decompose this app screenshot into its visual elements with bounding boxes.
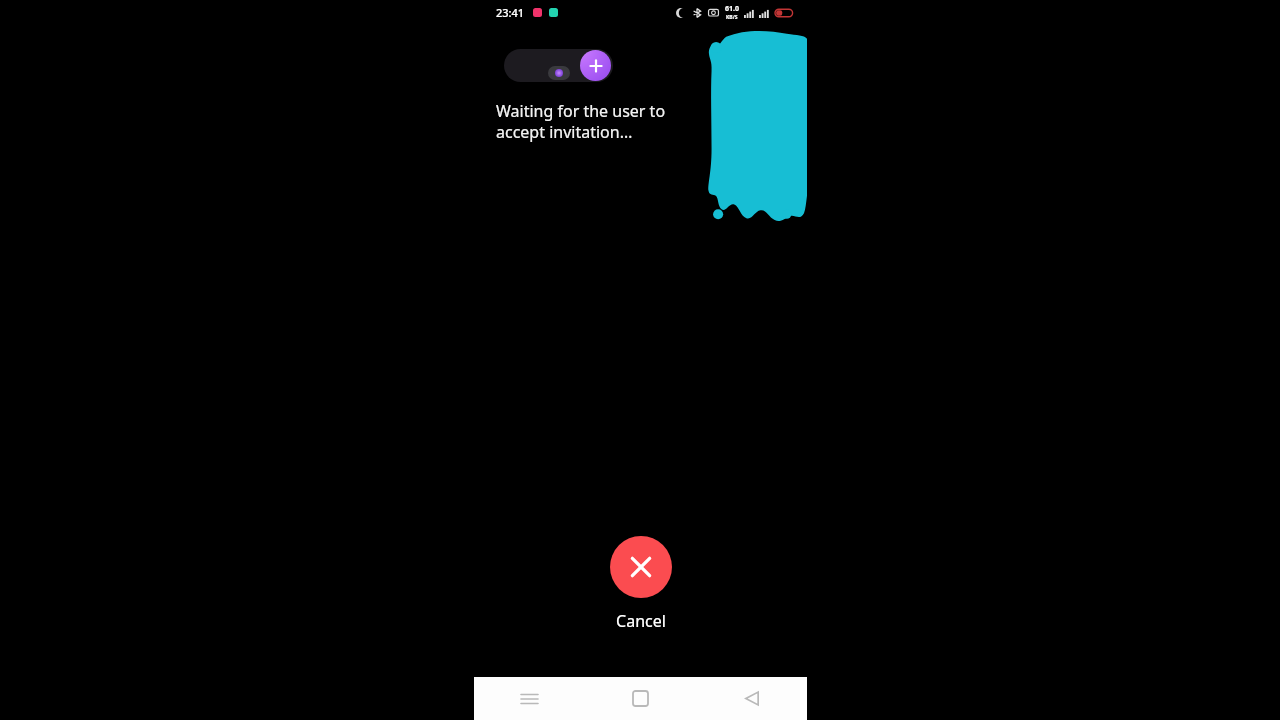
button[interactable]: Home (585, 677, 696, 720)
staticText: Waiting for the user to accept invitatio… (496, 100, 686, 143)
button[interactable]: Add participant (504, 49, 613, 82)
staticText: Cancel (616, 610, 666, 632)
button[interactable]: Cancel call (610, 536, 672, 598)
staticText: 61.0 (725, 4, 739, 14)
staticText: 23:41 (496, 5, 525, 20)
button[interactable]: Recent apps (474, 677, 585, 720)
button[interactable]: Add participant (580, 50, 611, 81)
staticText: KB/S (726, 14, 738, 21)
button[interactable]: Back (696, 677, 807, 720)
